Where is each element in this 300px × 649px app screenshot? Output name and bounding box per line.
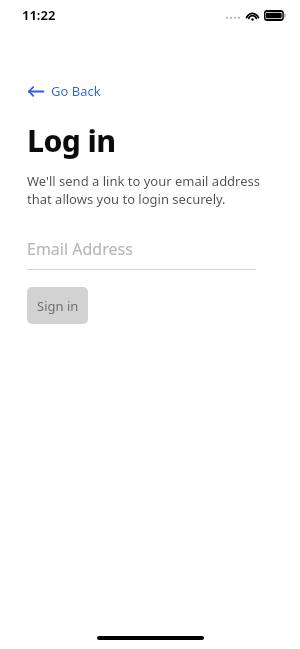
staticText: Log in [27, 120, 116, 161]
button[interactable]: Sign in [27, 287, 88, 324]
staticText: Sign in [37, 297, 79, 315]
staticText: Go Back [51, 82, 101, 100]
staticText: 11:22 [22, 6, 56, 24]
button[interactable]: Go Back [22, 78, 107, 104]
staticText: Email Address [27, 238, 133, 260]
staticText: We'll send a link to your email address … [27, 172, 261, 208]
button[interactable]: Email Address [27, 238, 256, 270]
